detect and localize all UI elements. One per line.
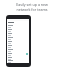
button[interactable]: [7, 48, 29, 52]
button[interactable]: [7, 32, 29, 36]
button[interactable]: [7, 21, 29, 24]
staticText: Easily set up a new network for teams: [16, 2, 48, 12]
button[interactable]: [7, 36, 29, 40]
button[interactable]: [7, 28, 29, 32]
button[interactable]: [7, 44, 29, 48]
button[interactable]: [7, 40, 29, 44]
button[interactable]: [7, 24, 29, 28]
button[interactable]: [7, 52, 29, 56]
button[interactable]: [7, 60, 29, 63]
button[interactable]: [7, 56, 29, 60]
